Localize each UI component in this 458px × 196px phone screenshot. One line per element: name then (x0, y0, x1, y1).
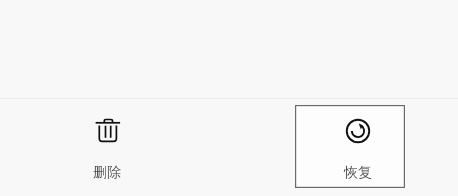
button[interactable]: 删除 (53, 105, 163, 188)
staticText: 恢复 (344, 164, 372, 182)
other: 恢复 (346, 119, 370, 143)
staticText: 删除 (93, 164, 121, 182)
button[interactable]: 恢复 (295, 105, 405, 188)
other: 删除 (96, 118, 120, 142)
